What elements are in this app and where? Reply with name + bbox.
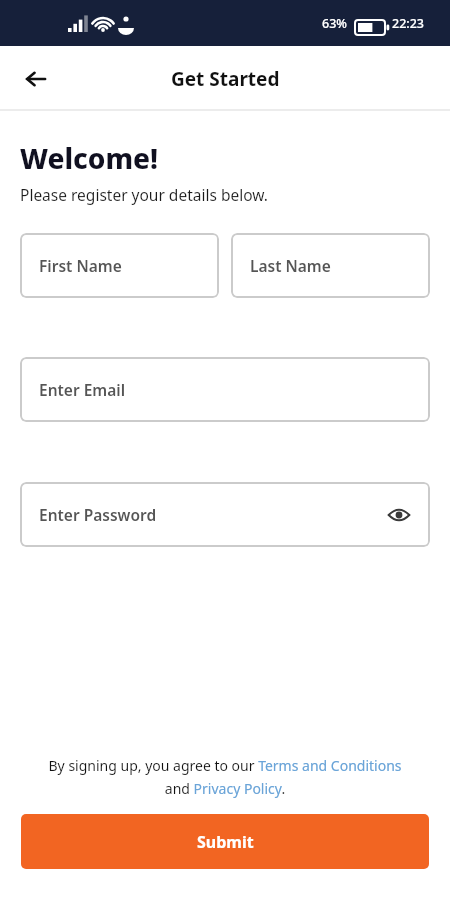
staticText: First Name: [39, 255, 122, 276]
button[interactable]: Show password: [384, 500, 414, 530]
staticText: Enter Password: [39, 504, 157, 525]
staticText: Get Started: [171, 66, 280, 92]
staticText: Please register your details below.: [20, 184, 268, 205]
staticText: Welcome!: [20, 139, 159, 177]
staticText: Last Name: [250, 255, 331, 276]
button[interactable]: Last Name: [231, 233, 430, 298]
button[interactable]: Enter Password: [20, 482, 430, 547]
button[interactable]: By signing up, you agree to our Terms an…: [46, 756, 404, 798]
staticText: Enter Email: [39, 379, 126, 400]
staticText: 63%: [322, 15, 347, 32]
staticText: 22:23: [392, 15, 425, 32]
button[interactable]: Back: [14, 57, 58, 101]
button[interactable]: First Name: [20, 233, 219, 298]
button[interactable]: Enter Email: [20, 357, 430, 422]
staticText: Submit: [197, 831, 254, 853]
button[interactable]: Submit: [21, 814, 429, 869]
